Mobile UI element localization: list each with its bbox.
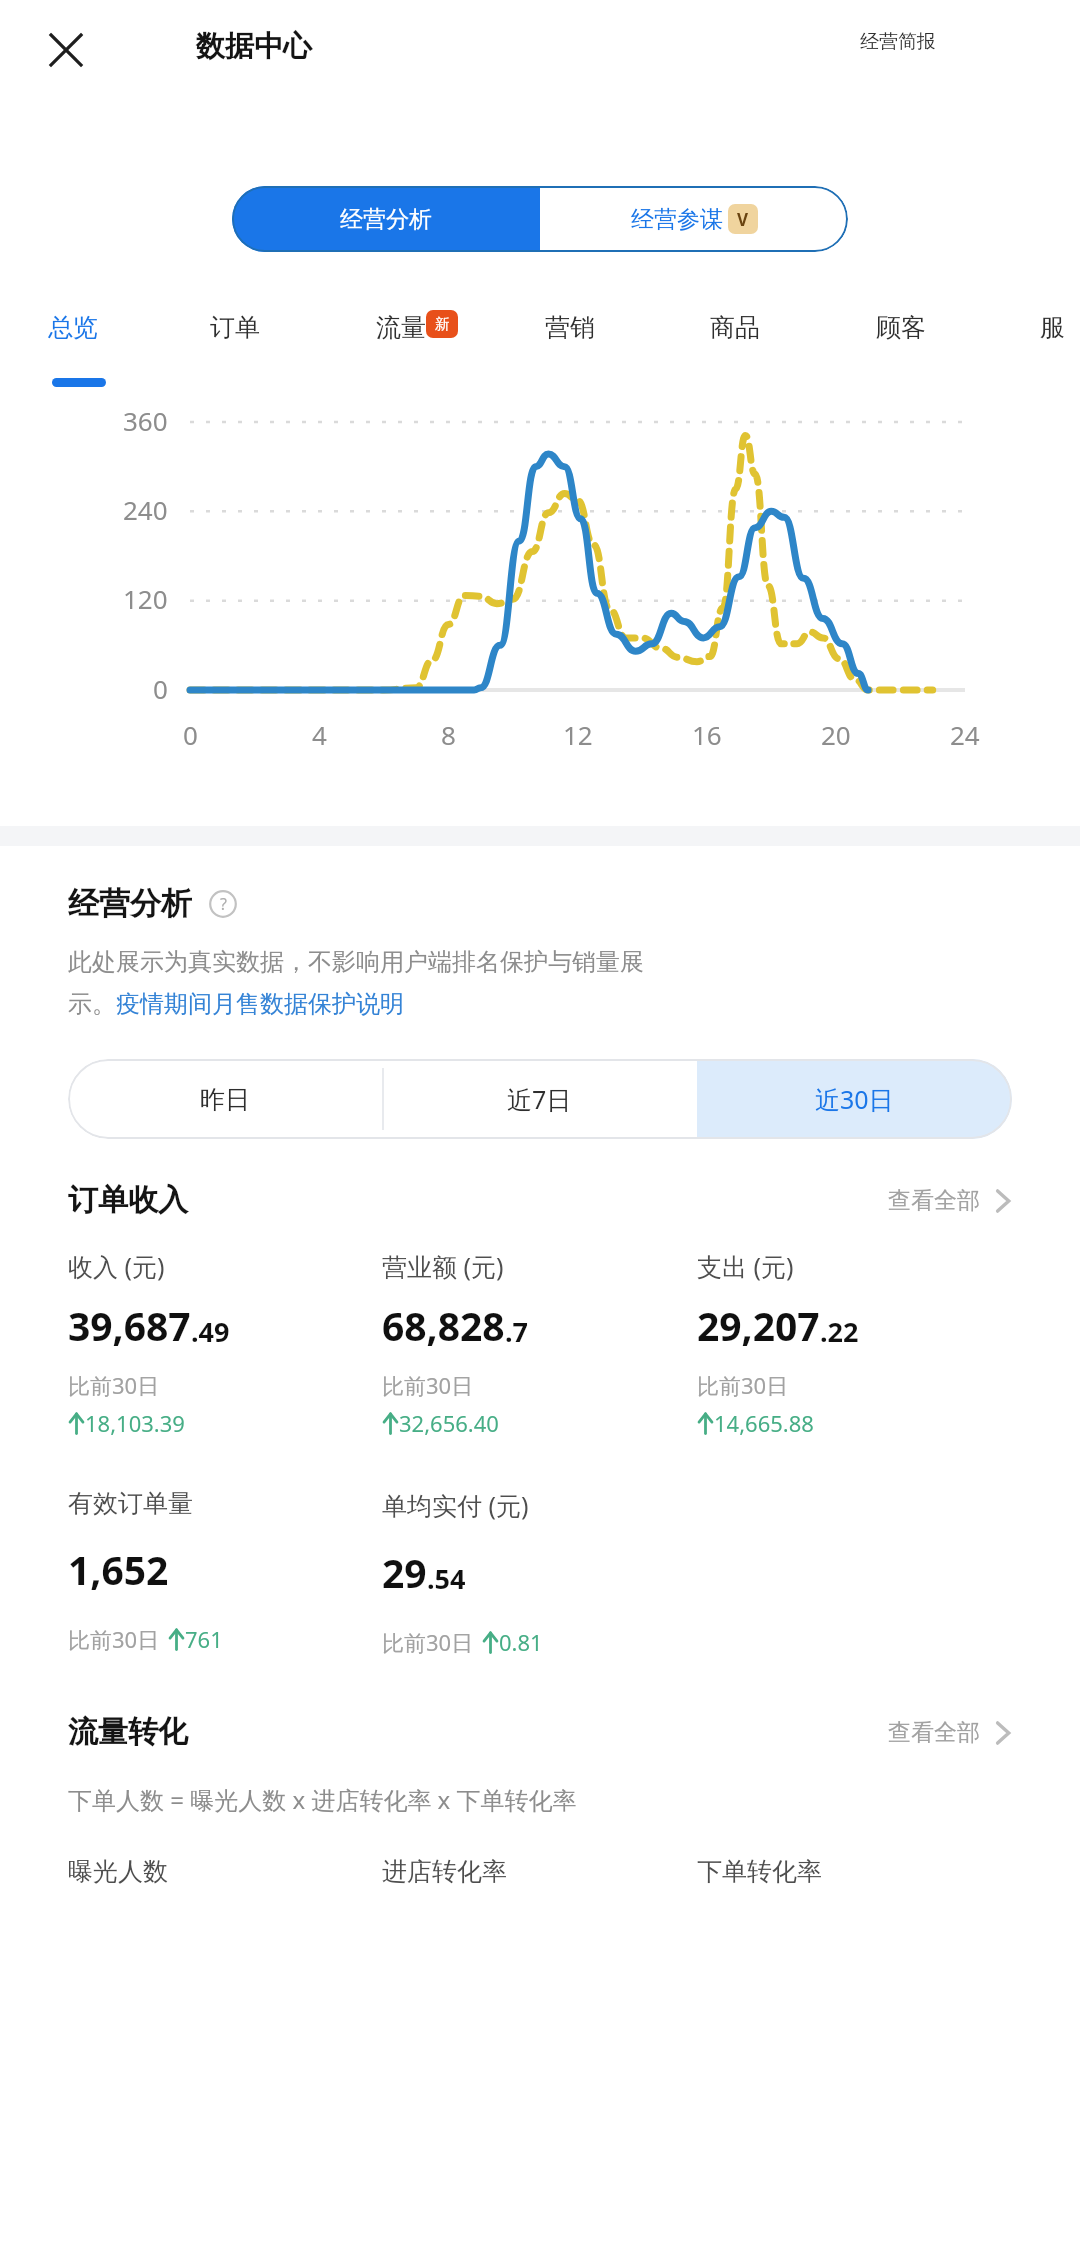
staticText: 12 xyxy=(563,717,593,752)
staticText: 昨日 xyxy=(200,1084,250,1115)
button[interactable]: 订单 xyxy=(210,312,260,343)
staticText: 240 xyxy=(123,492,168,527)
staticText: 比前30日 xyxy=(68,1370,160,1400)
staticText: 0 xyxy=(153,671,168,706)
button[interactable]: 商品 xyxy=(710,312,760,343)
staticText: 示。 xyxy=(68,989,116,1019)
staticText: 32,656.40 xyxy=(399,1408,499,1438)
staticText: 39,687 xyxy=(68,1299,191,1352)
staticText: ? xyxy=(220,893,227,915)
staticText: 流量 xyxy=(376,312,426,343)
staticText: 有效订单量 xyxy=(68,1488,193,1519)
staticText: 收入 (元) xyxy=(68,1249,165,1283)
button[interactable]: 近7日 xyxy=(382,1059,697,1139)
staticText: .54 xyxy=(427,1560,466,1597)
button[interactable]: Close xyxy=(36,20,96,80)
staticText: 761 xyxy=(185,1624,223,1654)
staticText: 18,103.39 xyxy=(85,1408,185,1438)
staticText: .22 xyxy=(820,1313,859,1350)
staticText: 近30日 xyxy=(815,1082,894,1116)
button[interactable]: 服 xyxy=(1040,312,1065,343)
staticText: 曝光人数 xyxy=(68,1856,168,1887)
staticText: 近7日 xyxy=(507,1082,572,1116)
staticText: 支出 (元) xyxy=(697,1249,794,1283)
staticText: V xyxy=(737,208,749,231)
staticText: 经营分析 xyxy=(340,205,432,234)
staticText: 疫情期间月售数据保护说明 xyxy=(116,989,404,1019)
button[interactable]: 疫情期间月售数据保护说明 xyxy=(116,989,404,1019)
staticText: 营业额 (元) xyxy=(382,1249,504,1283)
staticText: 查看全部 xyxy=(888,1718,980,1747)
staticText: 120 xyxy=(123,581,168,616)
button[interactable]: 总览 xyxy=(48,312,98,343)
staticText: 29,207 xyxy=(697,1299,820,1352)
staticText: 商品 xyxy=(710,312,760,343)
staticText: 14,665.88 xyxy=(714,1408,814,1438)
staticText: 0 xyxy=(183,717,198,752)
staticText: 4 xyxy=(312,717,327,752)
staticText: 360 xyxy=(123,403,168,438)
staticText: 29 xyxy=(382,1546,427,1599)
staticText: 经营简报 xyxy=(860,30,936,54)
staticText: 0.81 xyxy=(499,1627,543,1657)
staticText: 数据中心 xyxy=(196,28,312,65)
staticText: 20 xyxy=(821,717,851,752)
staticText: 顾客 xyxy=(876,312,926,343)
staticText: 下单转化率 xyxy=(697,1856,822,1887)
staticText: 1,652 xyxy=(68,1543,169,1596)
staticText: 总览 xyxy=(48,312,98,343)
staticText: 8 xyxy=(441,717,456,752)
staticText: 24 xyxy=(950,717,980,752)
button[interactable]: Help xyxy=(208,889,238,919)
button[interactable]: 近30日 xyxy=(697,1059,1012,1139)
staticText: 订单 xyxy=(210,312,260,343)
staticText: 比前30日 xyxy=(382,1627,474,1657)
button[interactable]: 经营分析 xyxy=(232,186,540,252)
staticText: 下单人数 = 曝光人数 x 进店转化率 x 下单转化率 xyxy=(68,1783,577,1816)
button[interactable]: 经营简报 xyxy=(846,16,950,68)
staticText: 进店转化率 xyxy=(382,1856,507,1887)
button[interactable]: 昨日 xyxy=(68,1059,382,1139)
staticText: 订单收入 xyxy=(68,1181,188,1219)
staticText: 此处展示为真实数据，不影响用户端排名保护与销量展 xyxy=(68,947,644,977)
button[interactable]: 查看全部 xyxy=(888,1718,1012,1747)
staticText: 查看全部 xyxy=(888,1186,980,1215)
staticText: 服 xyxy=(1040,312,1065,343)
staticText: 比前30日 xyxy=(68,1624,160,1654)
staticText: 营销 xyxy=(545,312,595,343)
button[interactable]: 营销 xyxy=(545,312,595,343)
staticText: 68,828 xyxy=(382,1299,505,1352)
staticText: 经营参谋 xyxy=(631,205,723,234)
staticText: 新 xyxy=(435,315,450,334)
button[interactable]: 顾客 xyxy=(876,312,926,343)
staticText: .49 xyxy=(191,1313,230,1350)
staticText: 经营分析 xyxy=(68,884,192,923)
staticText: 比前30日 xyxy=(697,1370,789,1400)
button[interactable]: 查看全部 xyxy=(888,1186,1012,1215)
button[interactable]: 流量 xyxy=(376,312,458,343)
button[interactable]: 经营参谋 xyxy=(540,186,848,252)
staticText: 单均实付 (元) xyxy=(382,1488,529,1522)
staticText: .7 xyxy=(505,1313,529,1350)
staticText: 比前30日 xyxy=(382,1370,474,1400)
staticText: 16 xyxy=(692,717,722,752)
staticText: 流量转化 xyxy=(68,1713,188,1751)
